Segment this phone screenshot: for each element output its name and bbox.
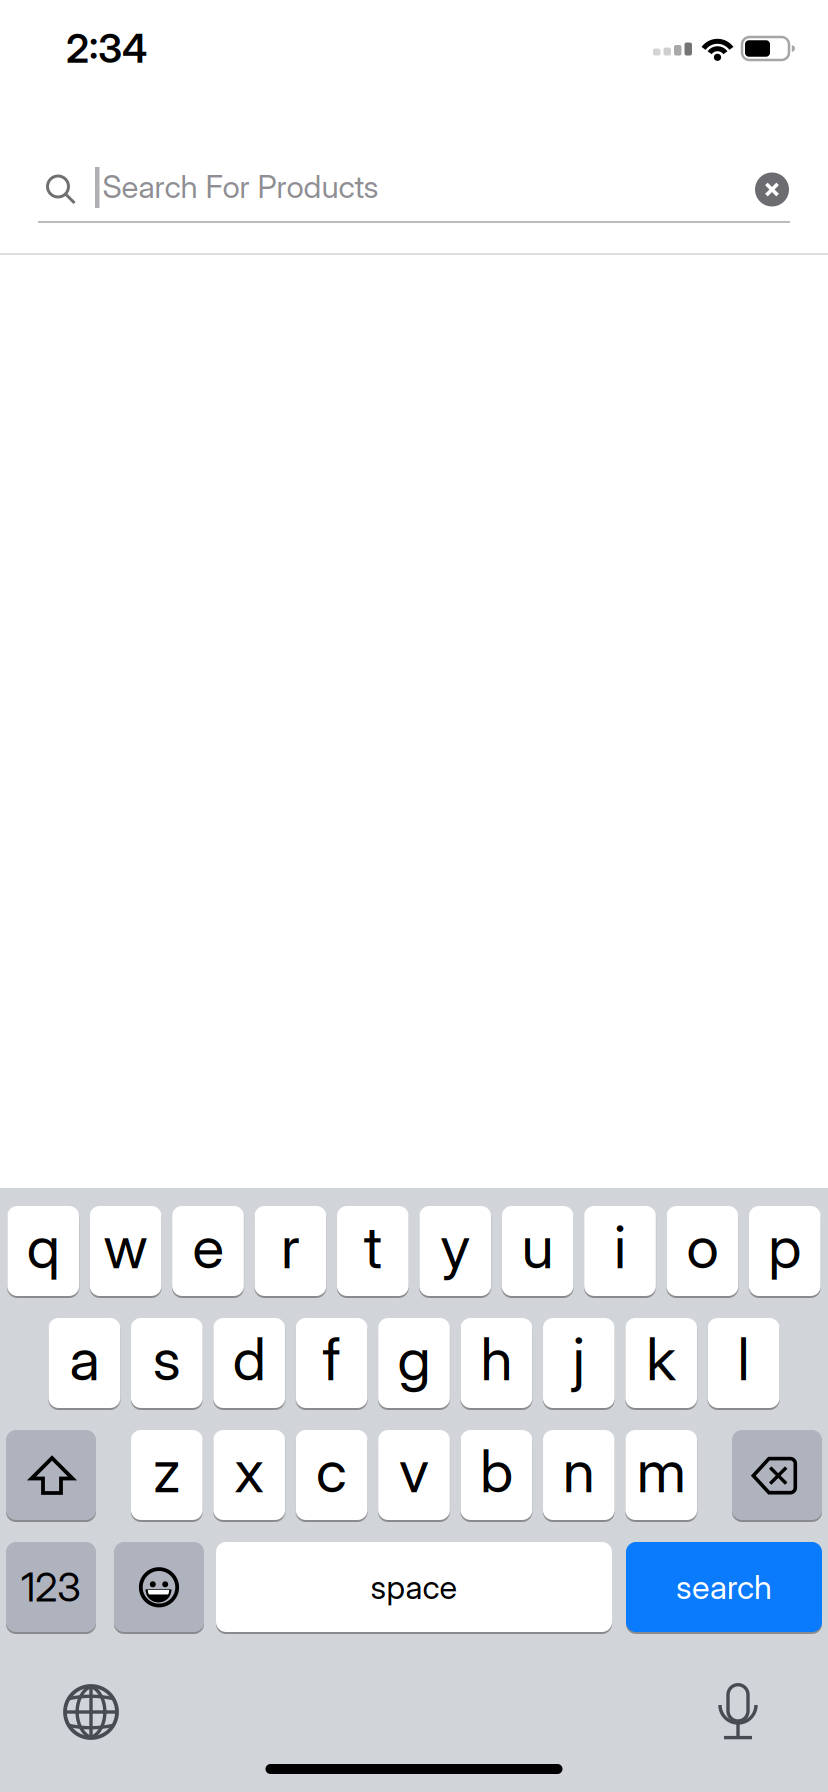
button[interactable]: k [625, 1318, 697, 1408]
button[interactable]: space [216, 1542, 612, 1632]
button[interactable]: 123 [6, 1542, 96, 1632]
button[interactable]: w [90, 1206, 161, 1296]
button[interactable]: o [666, 1206, 738, 1296]
button[interactable]: t [337, 1206, 409, 1296]
staticText: y [440, 1211, 470, 1282]
button[interactable]: s [131, 1318, 203, 1408]
staticText: q [27, 1211, 60, 1282]
button[interactable]: v [378, 1430, 450, 1520]
staticText: Search For Products [102, 167, 378, 205]
button[interactable]: p [749, 1206, 821, 1296]
staticText: m [637, 1435, 686, 1506]
staticText: a [69, 1323, 99, 1394]
staticText: c [316, 1435, 347, 1506]
staticText: u [522, 1211, 554, 1282]
staticText: t [364, 1211, 382, 1282]
button[interactable]: y [419, 1206, 491, 1296]
button[interactable]: x [213, 1430, 285, 1520]
staticText: p [768, 1211, 801, 1282]
button[interactable]: Shift [6, 1430, 96, 1520]
button[interactable]: Emoji [114, 1542, 204, 1632]
button[interactable]: l [708, 1318, 779, 1408]
staticText: l [738, 1323, 750, 1394]
staticText: b [480, 1435, 513, 1506]
button[interactable]: Clear search text [755, 172, 789, 206]
button[interactable]: b [461, 1430, 532, 1520]
staticText: w [104, 1211, 148, 1282]
staticText: v [399, 1435, 429, 1506]
button[interactable]: Dictate [718, 1683, 758, 1741]
staticText: n [563, 1435, 595, 1506]
staticText: search [676, 1567, 772, 1607]
button[interactable]: i [584, 1206, 656, 1296]
staticText: j [573, 1323, 585, 1394]
button[interactable]: z [131, 1430, 203, 1520]
staticText: k [646, 1323, 676, 1394]
button[interactable]: j [543, 1318, 615, 1408]
staticText: z [153, 1435, 181, 1506]
button[interactable]: search [626, 1542, 822, 1632]
staticText: s [153, 1323, 181, 1394]
button[interactable]: m [625, 1430, 697, 1520]
button[interactable]: c [296, 1430, 367, 1520]
staticText: e [192, 1211, 223, 1282]
button[interactable]: h [460, 1318, 532, 1408]
button[interactable]: g [378, 1318, 450, 1408]
staticText: g [397, 1323, 430, 1394]
button[interactable]: e [172, 1206, 244, 1296]
button[interactable]: Delete [732, 1430, 822, 1520]
button[interactable]: n [543, 1430, 615, 1520]
staticText: x [234, 1435, 264, 1506]
button[interactable]: q [7, 1206, 79, 1296]
staticText: space [370, 1567, 457, 1607]
staticText: d [233, 1323, 266, 1394]
staticText: i [614, 1211, 626, 1282]
button[interactable]: f [296, 1318, 367, 1408]
staticText: f [323, 1323, 341, 1394]
staticText: 123 [21, 1563, 81, 1611]
staticText: o [686, 1211, 718, 1282]
button[interactable]: u [502, 1206, 573, 1296]
staticText: h [480, 1323, 512, 1394]
button[interactable]: r [254, 1206, 326, 1296]
button[interactable]: d [213, 1318, 285, 1408]
button[interactable]: a [48, 1318, 120, 1408]
staticText: r [281, 1211, 300, 1282]
staticText: 2:34 [66, 25, 147, 72]
button[interactable]: Next keyboard [62, 1683, 120, 1741]
